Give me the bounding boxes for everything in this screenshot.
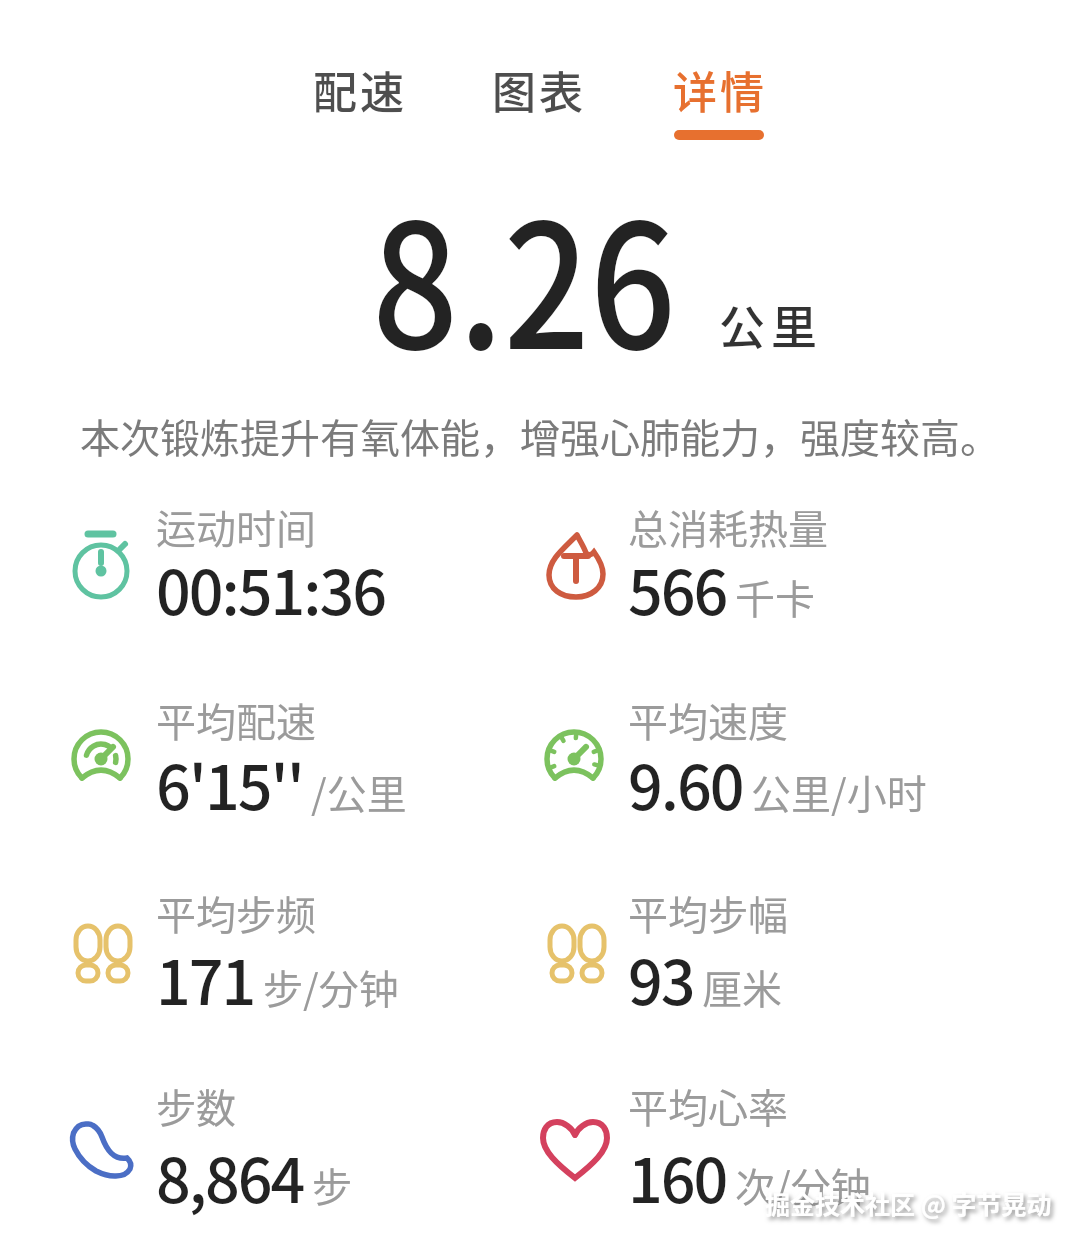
staticText: 9.60	[628, 739, 743, 827]
staticText: 平均步幅	[628, 884, 788, 942]
staticText: /公里	[311, 763, 407, 821]
staticText: 次/分钟	[735, 1156, 871, 1214]
staticText: 平均心率	[628, 1077, 788, 1135]
staticText: 8.26	[372, 149, 676, 398]
staticText: 公里/小时	[751, 763, 927, 821]
staticText: 平均配速	[156, 691, 316, 749]
staticText: 171	[156, 934, 255, 1022]
staticText: 掘金技术社区 @ 字节晃动	[765, 1185, 1052, 1221]
staticText: 566	[628, 544, 727, 632]
staticText: 配速	[313, 58, 407, 122]
staticText: 运动时间	[156, 498, 316, 556]
staticText: 8,864	[156, 1132, 304, 1220]
staticText: 图表	[492, 58, 586, 122]
staticText: 厘米	[702, 958, 782, 1016]
button[interactable]: 图表	[477, 56, 601, 124]
staticText: 公里	[716, 291, 820, 358]
staticText: 6'15''	[156, 739, 303, 827]
staticText: 本次锻炼提升有氧体能，增强心肺能力，强度较高。	[80, 407, 1000, 465]
staticText: 160	[628, 1132, 727, 1220]
staticText: 平均速度	[628, 691, 788, 749]
staticText: 93	[628, 934, 694, 1022]
staticText: 步	[312, 1156, 352, 1214]
staticText: 详情	[673, 58, 767, 122]
staticText: 步数	[156, 1077, 236, 1135]
staticText: 千卡	[735, 568, 815, 626]
staticText: 总消耗热量	[628, 498, 828, 556]
button[interactable]: 配速	[298, 56, 422, 124]
staticText: 平均步频	[156, 884, 316, 942]
staticText: 步/分钟	[263, 958, 399, 1016]
button[interactable]: 详情	[658, 56, 782, 124]
staticText: 00:51:36	[156, 544, 385, 632]
